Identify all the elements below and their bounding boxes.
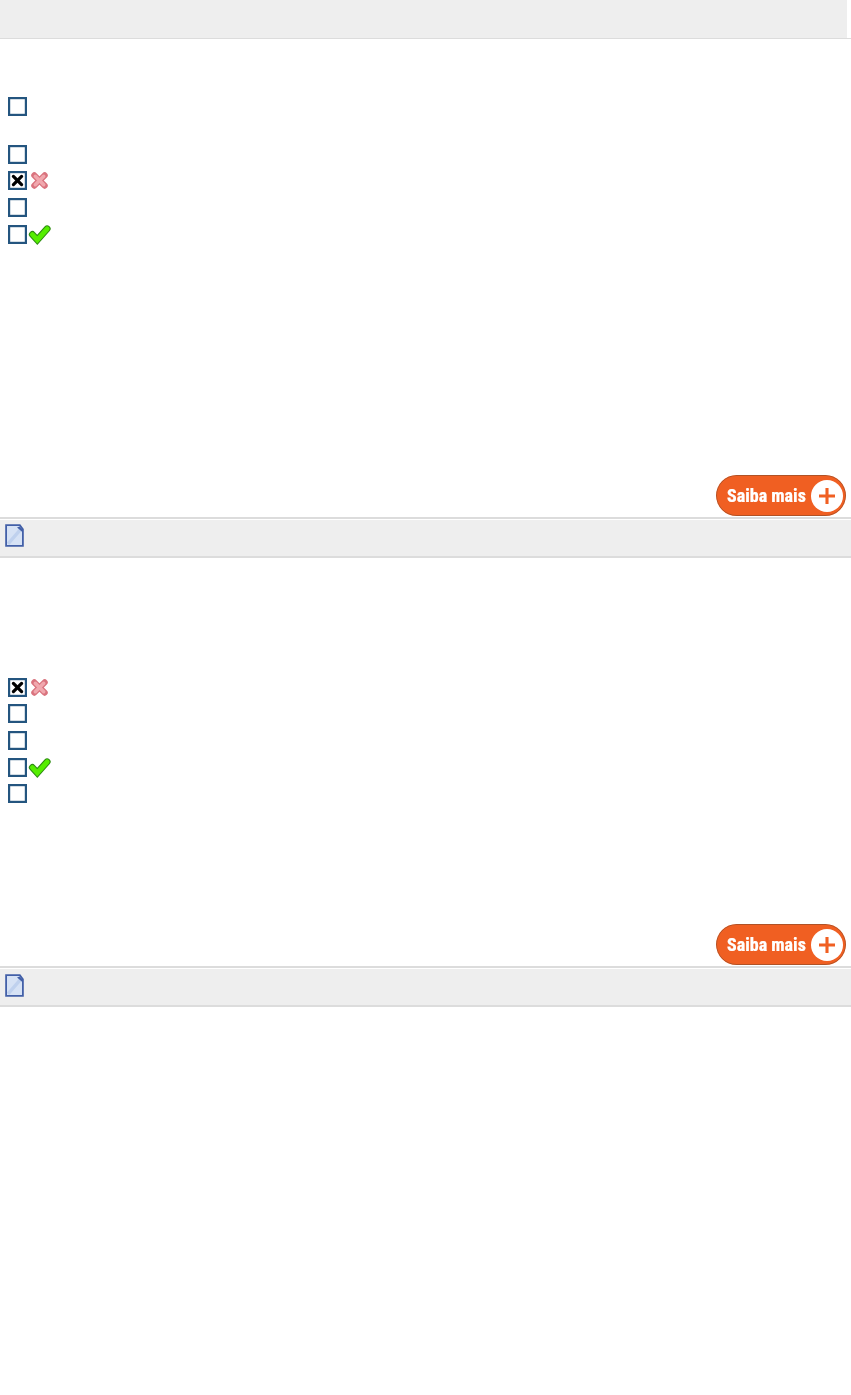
staticText: Saiba mais	[727, 485, 806, 506]
staticText: Saiba mais	[727, 934, 806, 955]
other: Expandir	[811, 480, 843, 512]
other: Expandir	[811, 929, 843, 961]
button[interactable]: Saiba mais	[716, 924, 846, 965]
button[interactable]: Saiba mais	[716, 475, 846, 516]
